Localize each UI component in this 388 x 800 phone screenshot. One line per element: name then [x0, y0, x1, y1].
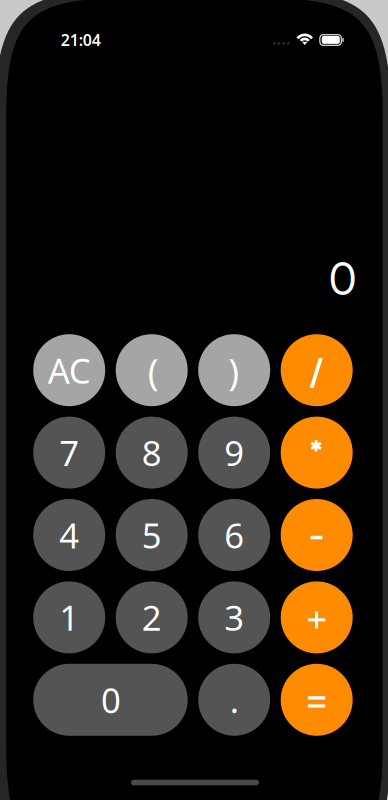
button[interactable]: Divide	[281, 334, 353, 406]
button[interactable]: 3	[198, 581, 270, 653]
staticText: 3	[224, 594, 244, 640]
staticText: 2	[142, 594, 162, 640]
button[interactable]: 7	[33, 417, 105, 489]
staticText: 0	[101, 677, 121, 723]
button[interactable]: 1	[33, 581, 105, 653]
button[interactable]: )	[198, 334, 270, 406]
staticText: 7	[59, 430, 79, 476]
staticText: 0	[329, 251, 357, 306]
button[interactable]: Equals	[281, 664, 353, 736]
button[interactable]: (	[116, 334, 188, 406]
button[interactable]: 0	[33, 664, 188, 736]
staticText: .	[230, 677, 239, 723]
staticText: 21:04	[61, 29, 101, 50]
staticText: 6	[224, 512, 244, 558]
staticText: 4	[59, 512, 79, 558]
staticText: 8	[142, 430, 162, 476]
button[interactable]: 6	[198, 499, 270, 571]
button[interactable]: Subtract	[281, 499, 353, 571]
button[interactable]: Add	[281, 581, 353, 653]
staticText: 5	[142, 512, 162, 558]
staticText: 9	[224, 430, 244, 476]
button[interactable]: .	[198, 664, 270, 736]
staticText: AC	[48, 347, 91, 393]
button[interactable]: Multiply	[281, 417, 353, 489]
button[interactable]: 2	[116, 581, 188, 653]
button[interactable]: 5	[116, 499, 188, 571]
staticText: 1	[59, 594, 79, 640]
button[interactable]: 8	[116, 417, 188, 489]
button[interactable]: AC	[33, 334, 105, 406]
staticText: (	[148, 347, 159, 395]
staticText: )	[228, 347, 239, 395]
button[interactable]: 4	[33, 499, 105, 571]
button[interactable]: 9	[198, 417, 270, 489]
